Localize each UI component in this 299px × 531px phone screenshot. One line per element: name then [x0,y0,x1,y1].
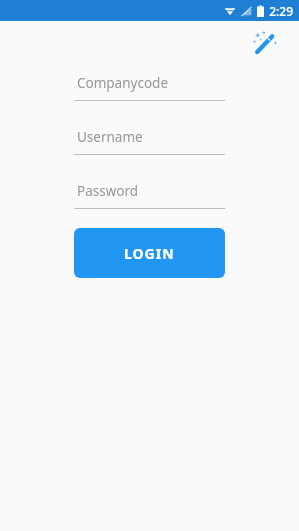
button[interactable]: Auto fill [249,27,281,59]
staticText: Password [77,182,139,200]
staticText: Companycode [77,74,168,92]
button[interactable]: Password [74,182,225,209]
staticText: LOGIN [124,244,175,263]
button[interactable]: Companycode [74,74,225,101]
button[interactable]: LOGIN [74,228,225,278]
staticText: 2:29 [269,3,293,19]
button[interactable]: Username [74,128,225,155]
staticText: Username [77,128,143,146]
